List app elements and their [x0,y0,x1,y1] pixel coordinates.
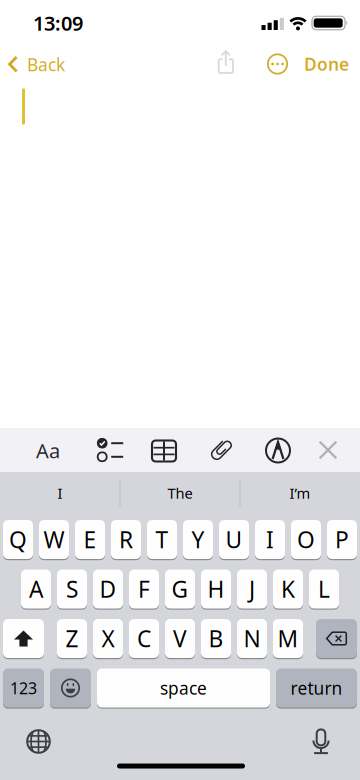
button[interactable]: Share [218,50,234,74]
staticText: C [137,623,151,653]
button[interactable]: P [327,520,357,559]
button[interactable]: Numbers [3,668,44,707]
button[interactable]: F [129,569,159,608]
button[interactable]: L [309,569,339,608]
staticText: S [66,574,78,604]
button[interactable]: G [165,569,195,608]
button[interactable]: Y [183,520,213,559]
staticText: H [207,574,224,604]
staticText: D [99,574,116,604]
button[interactable]: Checklist [96,437,124,463]
staticText: E [83,524,96,554]
staticText: K [281,574,295,604]
button[interactable]: E [75,520,105,559]
button[interactable]: The [123,473,237,513]
button[interactable]: Dismiss keyboard [318,440,337,459]
button[interactable]: Markup [265,437,291,463]
staticText: J [249,574,255,604]
staticText: V [173,623,187,653]
button[interactable]: Table [152,440,176,461]
button[interactable]: W [39,520,69,559]
button[interactable]: Back [2,49,72,80]
button[interactable]: D [93,569,123,608]
staticText: B [208,623,223,653]
staticText: N [243,623,260,653]
button[interactable]: Shift [3,619,44,658]
button[interactable]: Z [57,619,87,658]
staticText: P [335,524,349,554]
button[interactable]: T [147,520,177,559]
button[interactable]: B [201,619,231,658]
staticText: Q [9,524,27,554]
staticText: space [160,676,207,699]
staticText: The [167,483,192,503]
button[interactable]: J [237,569,267,608]
button[interactable]: Format [28,432,68,468]
staticText: F [138,574,150,604]
button[interactable]: M [273,619,303,658]
button[interactable]: I’m [243,473,357,513]
button[interactable]: C [129,619,159,658]
button[interactable]: V [165,619,195,658]
button[interactable]: K [273,569,303,608]
button[interactable]: Return [276,668,357,707]
button[interactable]: Attach [208,437,234,463]
staticText: M [277,623,298,653]
staticText: I’m [289,483,310,503]
button[interactable]: Q [3,520,33,559]
button[interactable]: H [201,569,231,608]
staticText: I [57,483,62,503]
staticText: 13:09 [33,10,83,36]
button[interactable]: Delete [316,619,357,658]
button[interactable]: Done [294,48,358,79]
button[interactable]: R [111,520,141,559]
button[interactable]: O [291,520,321,559]
staticText: Z [65,623,78,653]
button[interactable]: Dictation [312,728,329,755]
button[interactable]: Space [97,668,270,707]
staticText: U [225,524,242,554]
staticText: L [318,574,330,604]
staticText: Back [27,53,65,76]
staticText: O [297,524,315,554]
staticText: Aa [36,437,60,464]
staticText: return [290,676,342,699]
staticText: Done [304,52,349,75]
staticText: R [119,524,133,554]
staticText: G [171,574,188,604]
button[interactable]: Emoji [50,668,91,707]
button[interactable]: I [3,473,117,513]
staticText: 123 [10,677,37,699]
staticText: I [266,524,274,554]
staticText: Y [191,524,204,554]
staticText: T [155,524,168,554]
button[interactable]: I [255,520,285,559]
button[interactable]: N [237,619,267,658]
staticText: W [43,524,64,554]
button[interactable]: Next keyboard [26,729,50,753]
staticText: X [101,623,114,653]
button[interactable]: A [21,569,51,608]
staticText: A [29,574,43,604]
button[interactable]: X [93,619,123,658]
button[interactable]: S [57,569,87,608]
button[interactable]: U [219,520,249,559]
button[interactable]: More [266,53,288,75]
